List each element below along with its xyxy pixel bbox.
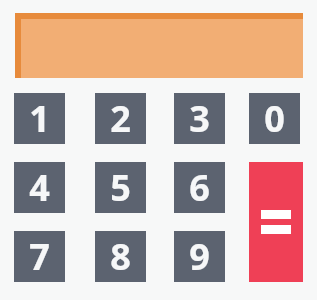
button[interactable]: 7 xyxy=(14,231,65,282)
button[interactable]: 8 xyxy=(95,231,146,282)
staticText: 9 xyxy=(189,232,210,281)
button[interactable]: 5 xyxy=(95,162,146,213)
staticText: 6 xyxy=(189,163,210,212)
staticText: 4 xyxy=(29,163,50,212)
button[interactable]: Equals xyxy=(249,162,303,282)
staticText: 7 xyxy=(29,232,50,281)
button[interactable]: 4 xyxy=(14,162,65,213)
staticText: 1 xyxy=(29,94,50,143)
button[interactable]: 3 xyxy=(174,93,225,144)
button[interactable]: 9 xyxy=(174,231,225,282)
button[interactable]: 0 xyxy=(249,93,300,144)
staticText: 2 xyxy=(110,94,131,143)
staticText: 0 xyxy=(264,94,285,143)
button[interactable]: Display xyxy=(15,13,303,78)
button[interactable]: 6 xyxy=(174,162,225,213)
staticText: 5 xyxy=(110,163,131,212)
staticText: 8 xyxy=(110,232,131,281)
staticText: 3 xyxy=(189,94,210,143)
button[interactable]: 2 xyxy=(95,93,146,144)
button[interactable]: 1 xyxy=(14,93,65,144)
